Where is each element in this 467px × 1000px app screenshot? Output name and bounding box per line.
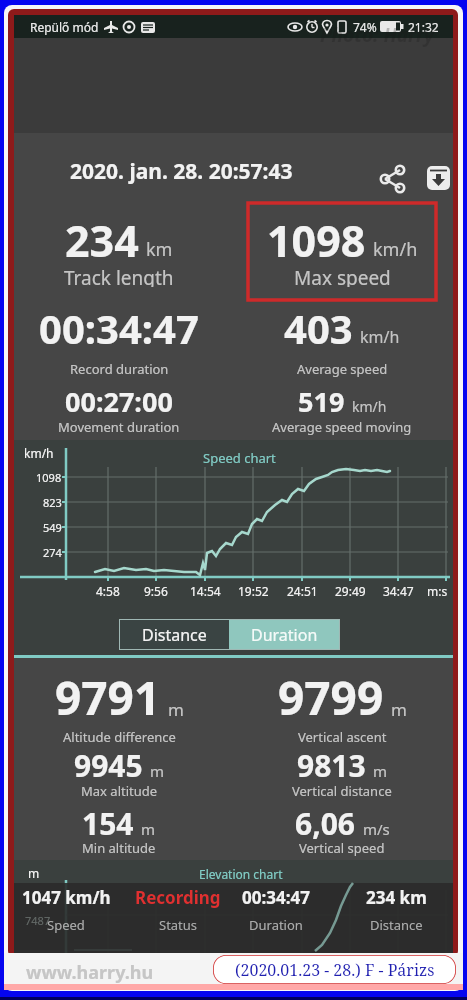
staticText: www.harry.hu <box>26 960 154 985</box>
button[interactable]: Recording <box>130 883 226 953</box>
button[interactable]: 234 km <box>348 883 444 953</box>
staticText: Track length <box>64 265 174 287</box>
staticText: 00:34:47 <box>39 301 199 355</box>
staticText: 24:51 <box>287 583 318 599</box>
staticText: 21:32 <box>408 19 439 35</box>
staticText: 274 <box>43 545 62 559</box>
staticText: 6,06 <box>295 803 356 844</box>
staticText: Average speed moving <box>272 418 412 436</box>
staticText: m <box>391 698 407 721</box>
staticText: Distance <box>142 624 207 646</box>
staticText: Vertical ascent <box>298 728 387 746</box>
staticText: 9945 <box>74 745 143 786</box>
staticText: 1047 km/h <box>22 886 111 909</box>
staticText: 1098 <box>267 211 366 267</box>
button[interactable]: 1047 km/h <box>18 883 114 953</box>
button[interactable] <box>380 165 406 191</box>
staticText: Photo: Harry <box>320 22 434 48</box>
staticText: Max speed <box>294 265 391 287</box>
staticText: Speed <box>47 916 85 934</box>
staticText: Distance <box>370 916 423 934</box>
staticText: m/s <box>363 819 390 839</box>
staticText: m <box>28 865 40 881</box>
staticText: 234 <box>65 211 139 267</box>
staticText: 2020. jan. 28. 20:57:43 <box>70 157 293 186</box>
staticText: km/h <box>373 237 418 262</box>
staticText: 74% <box>353 19 377 35</box>
staticText: km <box>146 237 173 262</box>
staticText: Max altitude <box>81 782 158 800</box>
staticText: Record duration <box>70 360 169 378</box>
staticText: m <box>150 761 165 781</box>
staticText: 549 <box>43 520 62 534</box>
staticText: km/h <box>24 445 54 461</box>
staticText: Min altitude <box>82 839 156 857</box>
button[interactable]: Distance <box>120 620 229 649</box>
staticText: 9791 <box>55 666 161 722</box>
staticText: 154 <box>82 803 134 844</box>
staticText: Movement duration <box>58 418 180 436</box>
staticText: 403 <box>284 301 353 355</box>
staticText: Vertical distance <box>292 782 392 800</box>
button[interactable]: 00:34:47 <box>228 883 324 953</box>
staticText: m:s <box>427 583 448 599</box>
staticText: 9813 <box>297 745 366 786</box>
staticText: m <box>373 761 388 781</box>
staticText: Status <box>159 916 198 934</box>
button[interactable] <box>427 166 451 191</box>
staticText: 00:27:00 <box>65 383 173 420</box>
staticText: m <box>141 819 156 839</box>
button[interactable]: Duration <box>229 620 339 649</box>
staticText: Average speed <box>297 360 388 378</box>
staticText: 7487 <box>25 913 51 928</box>
staticText: 00:34:47 <box>242 886 310 909</box>
staticText: Altitude difference <box>63 728 176 746</box>
staticText: Repülő mód <box>30 19 99 35</box>
staticText: 29:49 <box>335 583 366 599</box>
staticText: Duration <box>251 624 318 646</box>
staticText: 19:52 <box>238 583 269 599</box>
staticText: 14:54 <box>190 583 221 599</box>
staticText: Duration <box>249 916 303 934</box>
staticText: m <box>168 698 184 721</box>
staticText: 9:56 <box>144 583 168 599</box>
staticText: 234 km <box>366 886 427 909</box>
button[interactable]: (2020.01.23 - 28.) F - Párizs <box>213 955 456 984</box>
staticText: km/h <box>352 397 387 416</box>
staticText: Recording <box>135 886 221 909</box>
staticText: (2020.01.23 - 28.) F - Párizs <box>235 959 435 981</box>
staticText: Vertical speed <box>299 839 385 857</box>
staticText: 34:47 <box>383 583 414 599</box>
staticText: 9799 <box>278 666 384 722</box>
staticText: Elevation chart <box>199 866 283 882</box>
staticText: 823 <box>43 495 62 509</box>
staticText: Speed chart <box>203 449 276 467</box>
staticText: 1098 <box>36 470 62 484</box>
staticText: 519 <box>298 383 345 420</box>
staticText: 4:58 <box>96 583 120 599</box>
staticText: km/h <box>360 326 400 348</box>
